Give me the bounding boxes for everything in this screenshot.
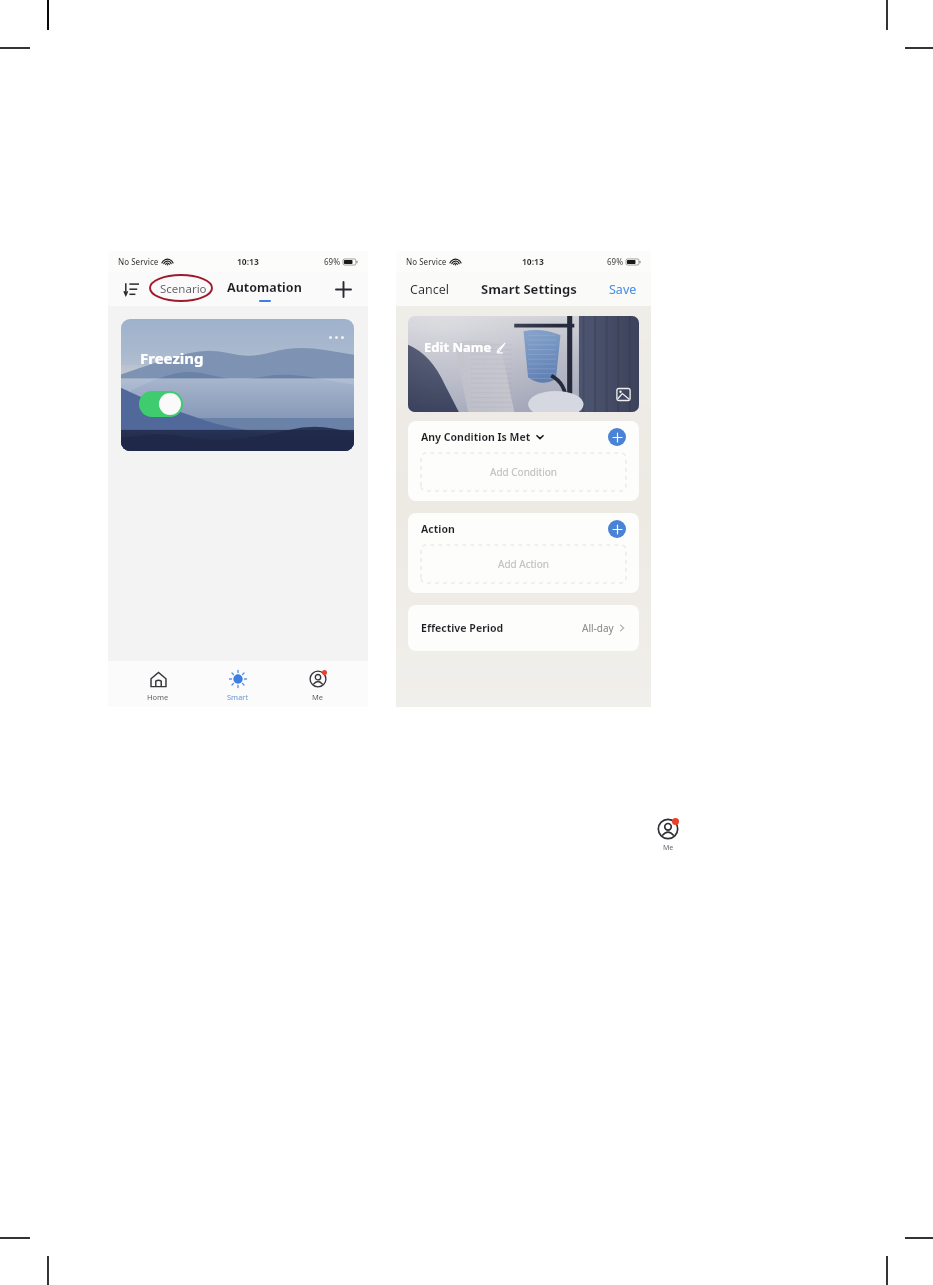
button[interactable]: Save [607,279,639,300]
button[interactable]: Me [288,667,348,704]
staticText: Automation [227,279,302,296]
staticText: Me [663,843,674,853]
staticText: 10:13 [522,256,544,268]
button[interactable]: Add [330,276,356,302]
button[interactable]: Home [128,667,188,704]
staticText: All-day [582,621,614,635]
button[interactable]: Effective Period [408,605,639,651]
staticText: 69% [324,256,340,267]
staticText: Edit Name [424,338,492,356]
button[interactable]: Cancel [408,279,451,300]
staticText: 69% [607,256,623,267]
staticText: Me [312,692,324,702]
button[interactable]: Add [608,520,626,538]
staticText: Scenario [160,281,207,297]
button[interactable]: Automation [223,277,306,298]
staticText: Add Condition [490,465,557,479]
button[interactable]: Change image [616,387,631,402]
button[interactable]: Add Action [421,545,626,583]
staticText: 10:13 [237,256,259,268]
button[interactable]: Sort [118,276,144,302]
staticText: Cancel [410,281,449,298]
button[interactable]: Add [608,428,626,446]
staticText: Freezing [140,348,204,368]
staticText: Smart Settings [481,280,577,298]
staticText: Any Condition Is Met [421,430,531,444]
button[interactable]: Enable Freezing scenario [139,391,183,417]
button[interactable]: Scenario [154,277,213,301]
button[interactable]: Add Condition [421,453,626,491]
button[interactable]: More options [326,327,346,347]
staticText: Smart [227,692,249,702]
button[interactable]: Smart [208,667,268,704]
button[interactable]: Any Condition Is Met [421,430,544,444]
staticText: Add Action [498,557,549,571]
staticText: Effective Period [421,621,504,635]
button[interactable]: Edit Name [408,316,639,412]
staticText: Home [147,692,169,702]
staticText: No Service [406,256,447,267]
staticText: No Service [118,256,159,267]
button[interactable]: Edit Name [424,338,507,356]
button[interactable]: More options [121,319,354,451]
staticText: Action [421,522,455,536]
staticText: Save [609,281,637,298]
